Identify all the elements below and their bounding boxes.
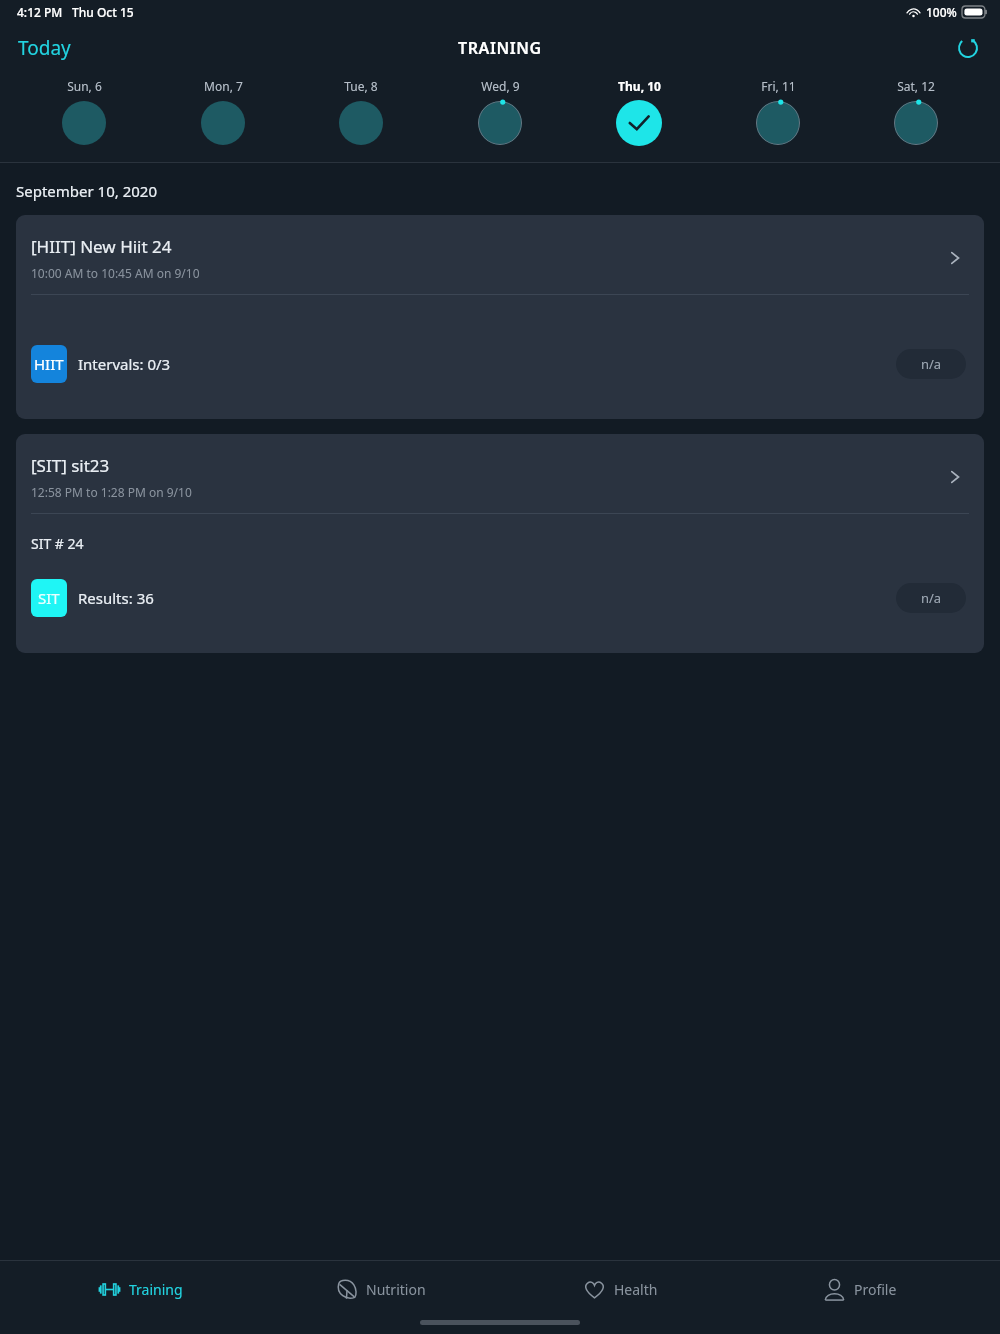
button[interactable]: Training <box>40 1272 240 1307</box>
staticText: n/a <box>921 589 942 607</box>
staticText: September 10, 2020 <box>16 181 158 201</box>
staticText: [HIIT] New Hiit 24 <box>31 235 172 258</box>
staticText: Mon, 7 <box>204 78 243 94</box>
staticText: Sun, 6 <box>67 78 102 94</box>
button[interactable]: [SIT] sit23 <box>16 434 984 653</box>
button[interactable]: Sun, 6 <box>29 72 139 146</box>
button[interactable]: Fri, 11 <box>723 72 833 146</box>
staticText: Results: 36 <box>78 588 154 608</box>
button[interactable]: n/a <box>896 349 966 379</box>
staticText: Thu Oct 15 <box>72 4 134 20</box>
staticText: Health <box>614 1280 658 1299</box>
button[interactable]: Today <box>0 27 89 69</box>
button[interactable]: Wed, 9 <box>445 72 555 146</box>
button[interactable]: Refresh <box>950 30 986 66</box>
staticText: Sat, 12 <box>897 78 935 94</box>
button[interactable]: n/a <box>896 583 966 613</box>
button[interactable]: [HIIT] New Hiit 24 <box>16 215 984 419</box>
staticText: 4:12 PM <box>17 4 63 20</box>
staticText: SIT # 24 <box>31 534 84 553</box>
staticText: 12:58 PM to 1:28 PM on 9/10 <box>31 484 192 500</box>
staticText: 100% <box>926 4 957 20</box>
staticText: TRAINING <box>458 37 542 59</box>
staticText: Thu, 10 <box>618 78 661 94</box>
button[interactable]: Mon, 7 <box>168 72 278 146</box>
button[interactable]: Nutrition <box>280 1272 480 1307</box>
staticText: Intervals: 0/3 <box>78 354 171 374</box>
staticText: Profile <box>854 1280 897 1299</box>
button[interactable]: Sat, 12 <box>861 72 971 146</box>
staticText: SIT <box>38 588 60 608</box>
staticText: Tue, 8 <box>344 78 378 94</box>
button[interactable]: Tue, 8 <box>306 72 416 146</box>
staticText: Today <box>18 35 71 61</box>
staticText: Fri, 11 <box>761 78 796 94</box>
staticText: 10:00 AM to 10:45 AM on 9/10 <box>31 265 200 281</box>
staticText: [SIT] sit23 <box>31 454 110 477</box>
staticText: Training <box>129 1280 183 1299</box>
staticText: Wed, 9 <box>481 78 520 94</box>
staticText: HIIT <box>34 354 64 374</box>
button[interactable]: Health <box>520 1272 720 1307</box>
button[interactable]: Profile <box>760 1272 960 1307</box>
staticText: n/a <box>921 355 942 373</box>
button[interactable]: Thu, 10 <box>584 72 694 146</box>
staticText: Nutrition <box>366 1280 426 1299</box>
